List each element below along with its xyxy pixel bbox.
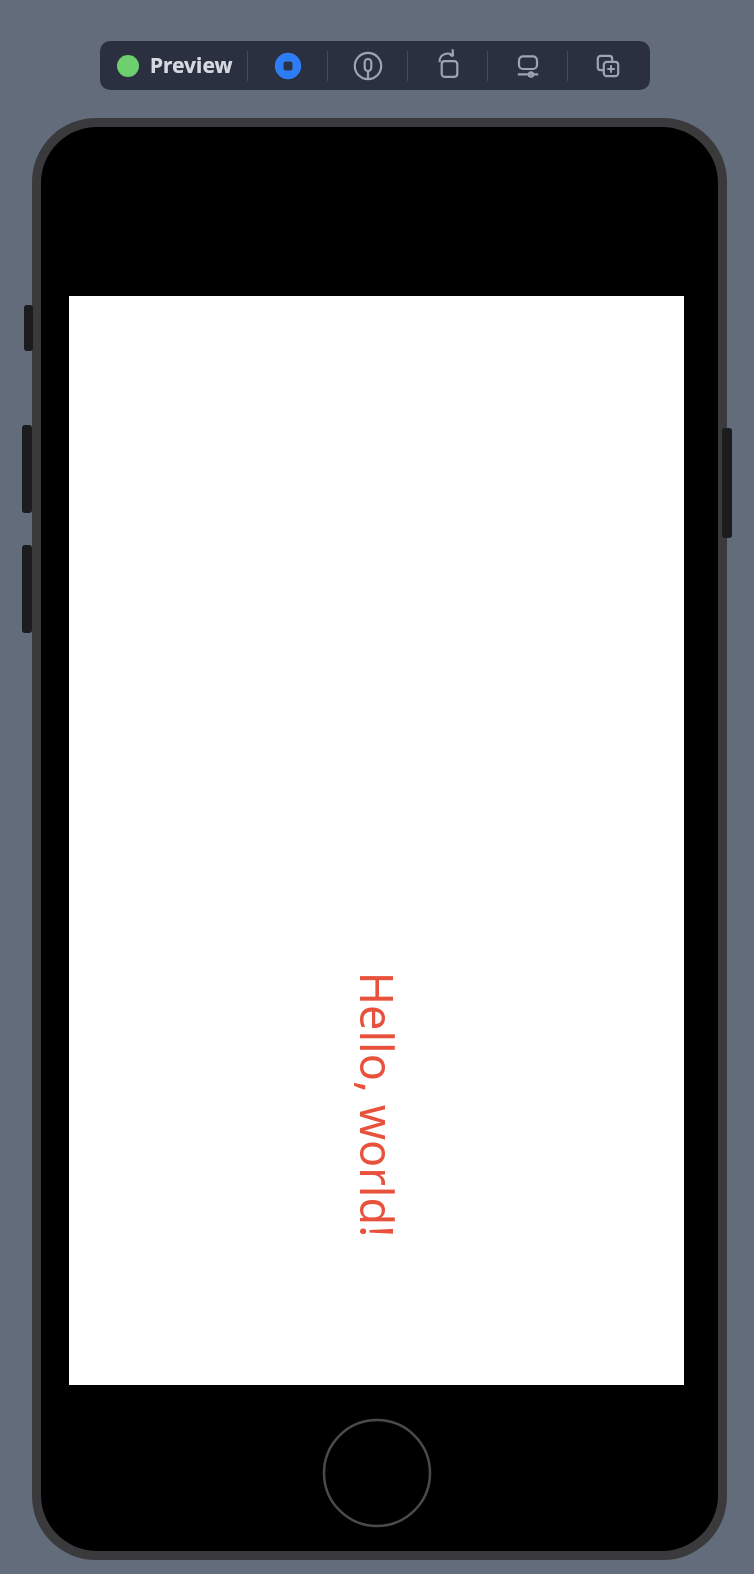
button[interactable]: Inspect (328, 41, 407, 90)
button[interactable]: Display settings (488, 41, 567, 90)
button[interactable]: Home (322, 1418, 432, 1528)
button[interactable]: Rotate (408, 41, 487, 90)
button[interactable]: Stop (248, 41, 327, 90)
button[interactable]: Duplicate (568, 41, 647, 90)
staticText: Preview (150, 51, 233, 80)
staticText: Hello, world! (346, 971, 407, 1237)
button[interactable]: Preview (100, 41, 247, 90)
